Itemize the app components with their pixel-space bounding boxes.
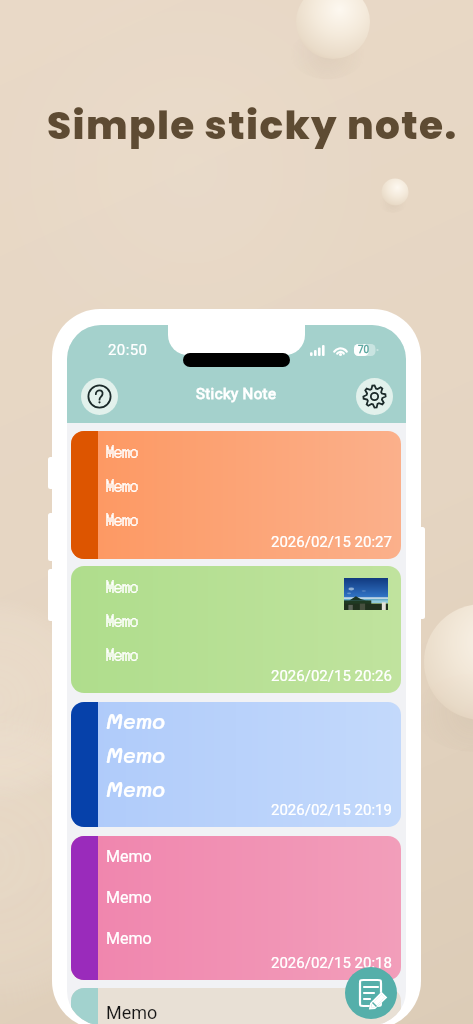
button[interactable]: Memo (71, 566, 401, 693)
staticText: Memo (106, 439, 139, 462)
staticText: 2026/02/15 20:18 (271, 954, 392, 972)
button[interactable]: Memo (71, 431, 401, 559)
staticText: Memo (106, 507, 139, 530)
staticText: Memo (106, 473, 139, 496)
staticText: Sticky Note (196, 385, 277, 403)
staticText: 2026/02/15 20:26 (271, 667, 392, 685)
staticText: 2026/02/15 20:19 (271, 801, 392, 819)
staticText: 2026/02/15 20:27 (271, 533, 392, 551)
staticText: Memo (106, 888, 152, 907)
button[interactable]: Memo (71, 702, 401, 827)
staticText: Simple sticky note. (47, 98, 458, 153)
staticText: Memo (106, 847, 152, 866)
staticText: 20:50 (108, 341, 148, 359)
staticText: Memo (106, 608, 139, 631)
button[interactable]: Memo (71, 988, 401, 1024)
button[interactable]: Memo (71, 836, 401, 980)
button[interactable]: New note (345, 967, 397, 1019)
staticText: Memo (106, 775, 165, 802)
button[interactable]: Settings (356, 378, 393, 415)
staticText: Memo (106, 642, 139, 665)
staticText: 70 (358, 344, 370, 356)
staticText: Memo (106, 741, 165, 768)
button[interactable]: Help (81, 378, 118, 415)
staticText: Memo (106, 707, 165, 734)
staticText: Memo (106, 574, 139, 597)
staticText: Memo (106, 1002, 158, 1023)
staticText: Memo (106, 929, 152, 948)
